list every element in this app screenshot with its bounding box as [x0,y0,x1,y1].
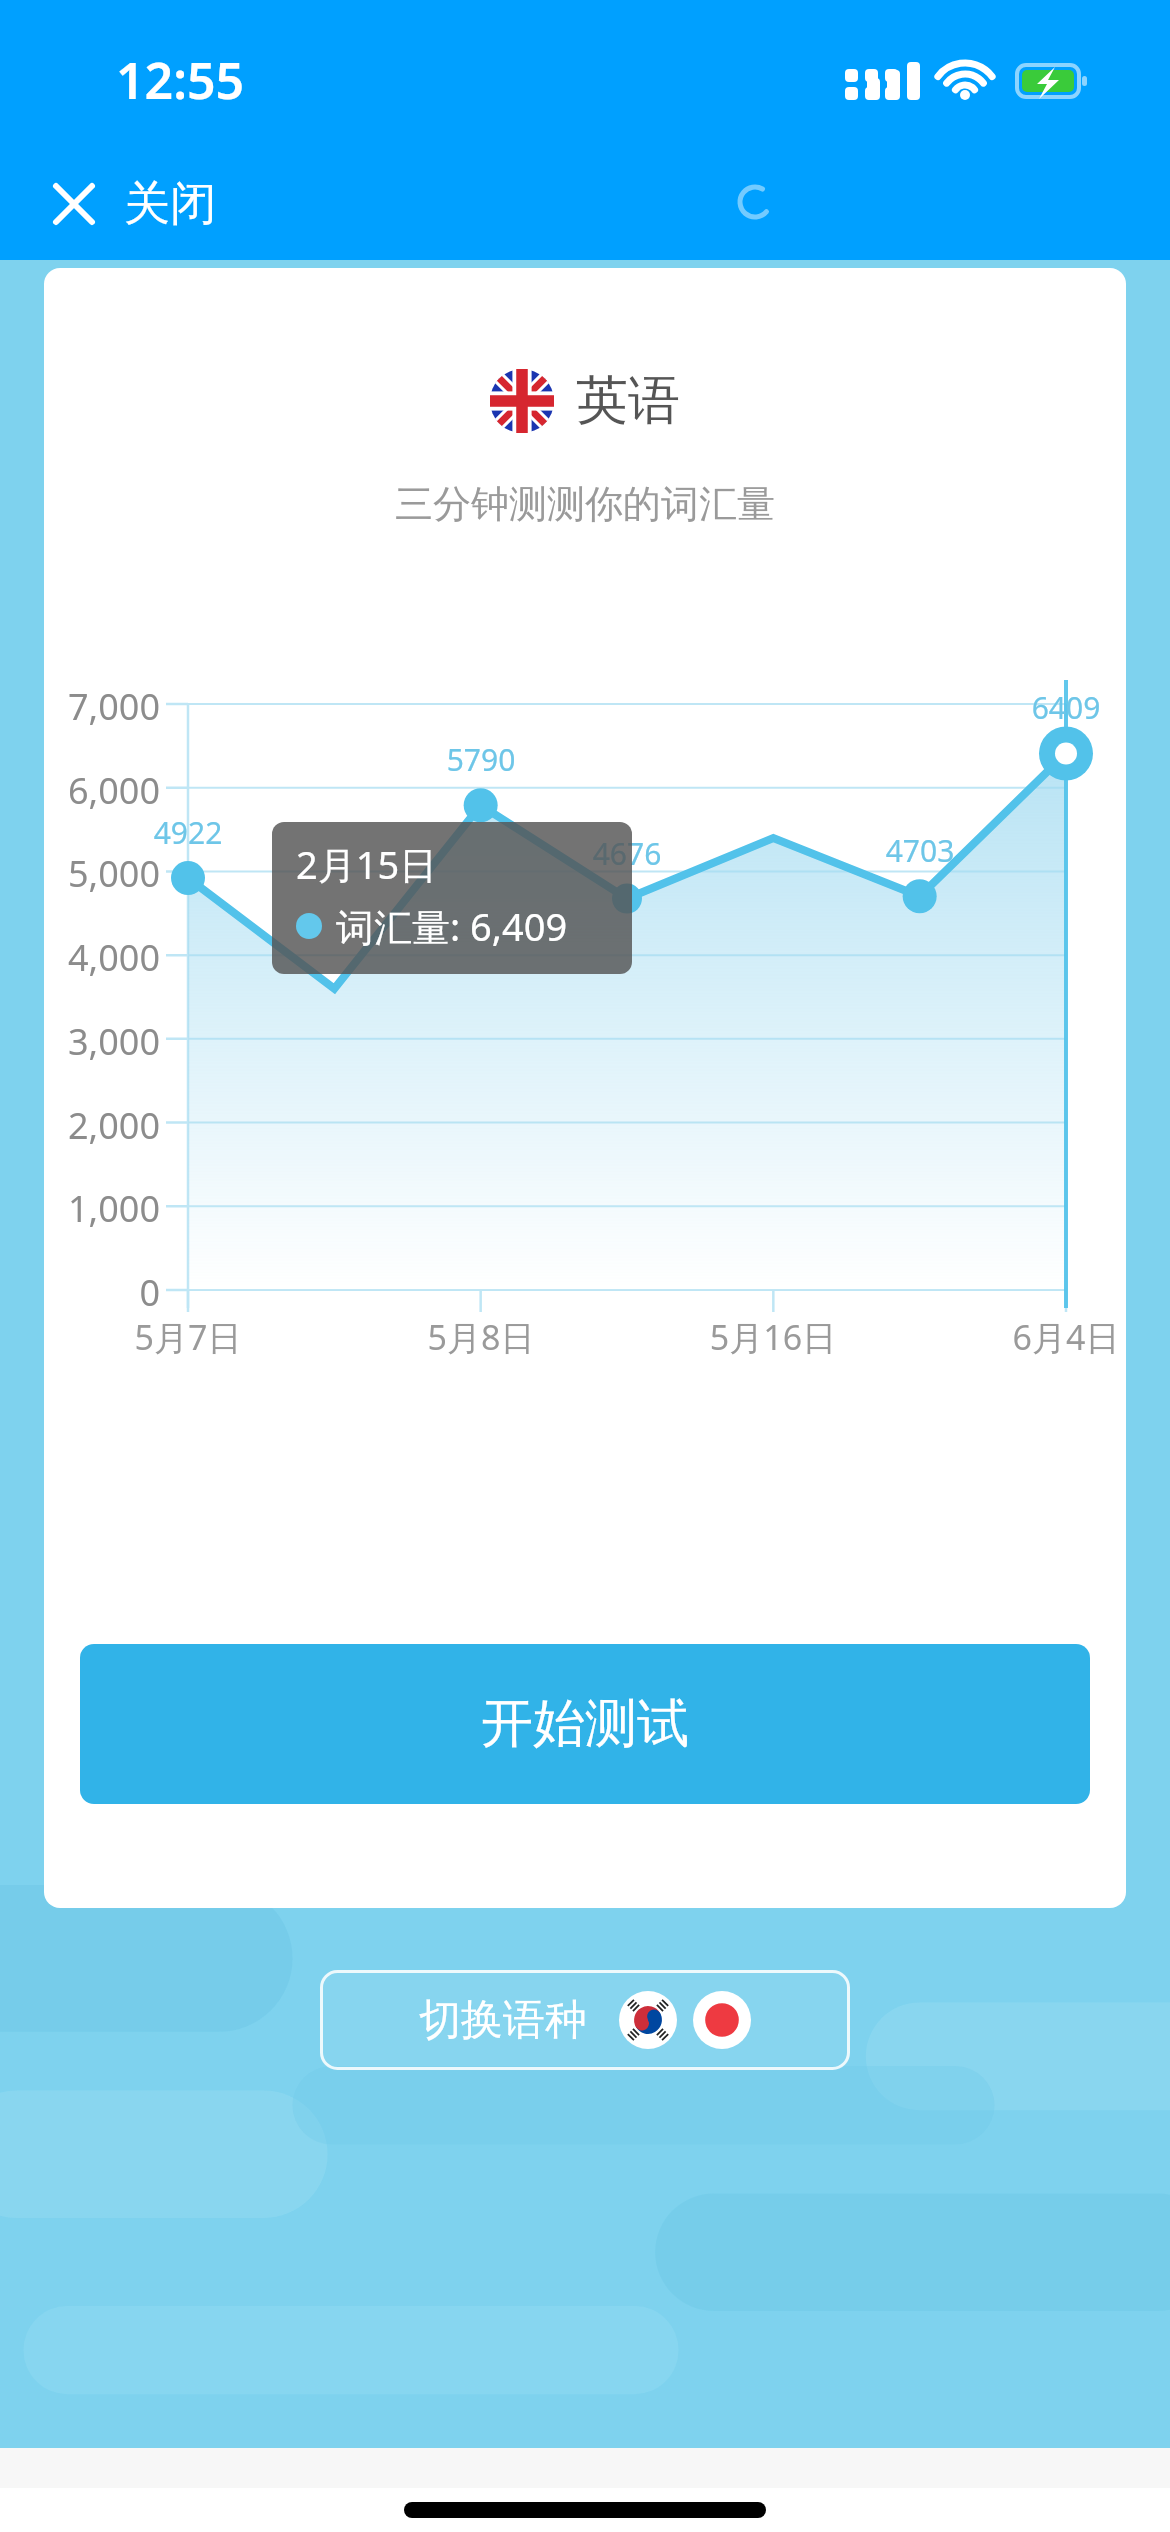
button[interactable]: 开始测试 [80,1644,1090,1804]
staticText: 6,000 [44,766,160,815]
staticText: 5月8日 [401,1314,561,1360]
staticText: 4922 [134,812,242,853]
button[interactable]: 切换语种 [320,1970,850,2070]
staticText: 关闭 [124,175,216,233]
staticText: 2月15日 [296,838,438,890]
staticText: 5月7日 [108,1314,268,1360]
staticText: 5790 [427,739,535,780]
staticText: 三分钟测测你的词汇量 [44,480,1126,528]
staticText: 6409 [1012,687,1120,728]
staticText: 1,000 [44,1184,160,1233]
staticText: 5月16日 [693,1314,853,1360]
staticText: 6月4日 [986,1314,1126,1360]
staticText: 7,000 [44,682,160,731]
staticText: 切换语种 [419,1994,587,2047]
staticText: 4,000 [44,933,160,982]
staticText: 5,000 [44,849,160,898]
staticText: 开始测试 [481,1691,689,1757]
staticText: 4703 [866,830,974,871]
staticText: 3,000 [44,1017,160,1066]
staticText: 0 [44,1268,160,1317]
staticText: 英语 [576,368,680,434]
staticText: 2,000 [44,1101,160,1150]
staticText: 12:55 [116,46,245,114]
button[interactable]: 关闭 [48,175,216,233]
staticText: 词汇量: 6,409 [336,900,568,952]
staticText: 4676 [573,833,681,874]
